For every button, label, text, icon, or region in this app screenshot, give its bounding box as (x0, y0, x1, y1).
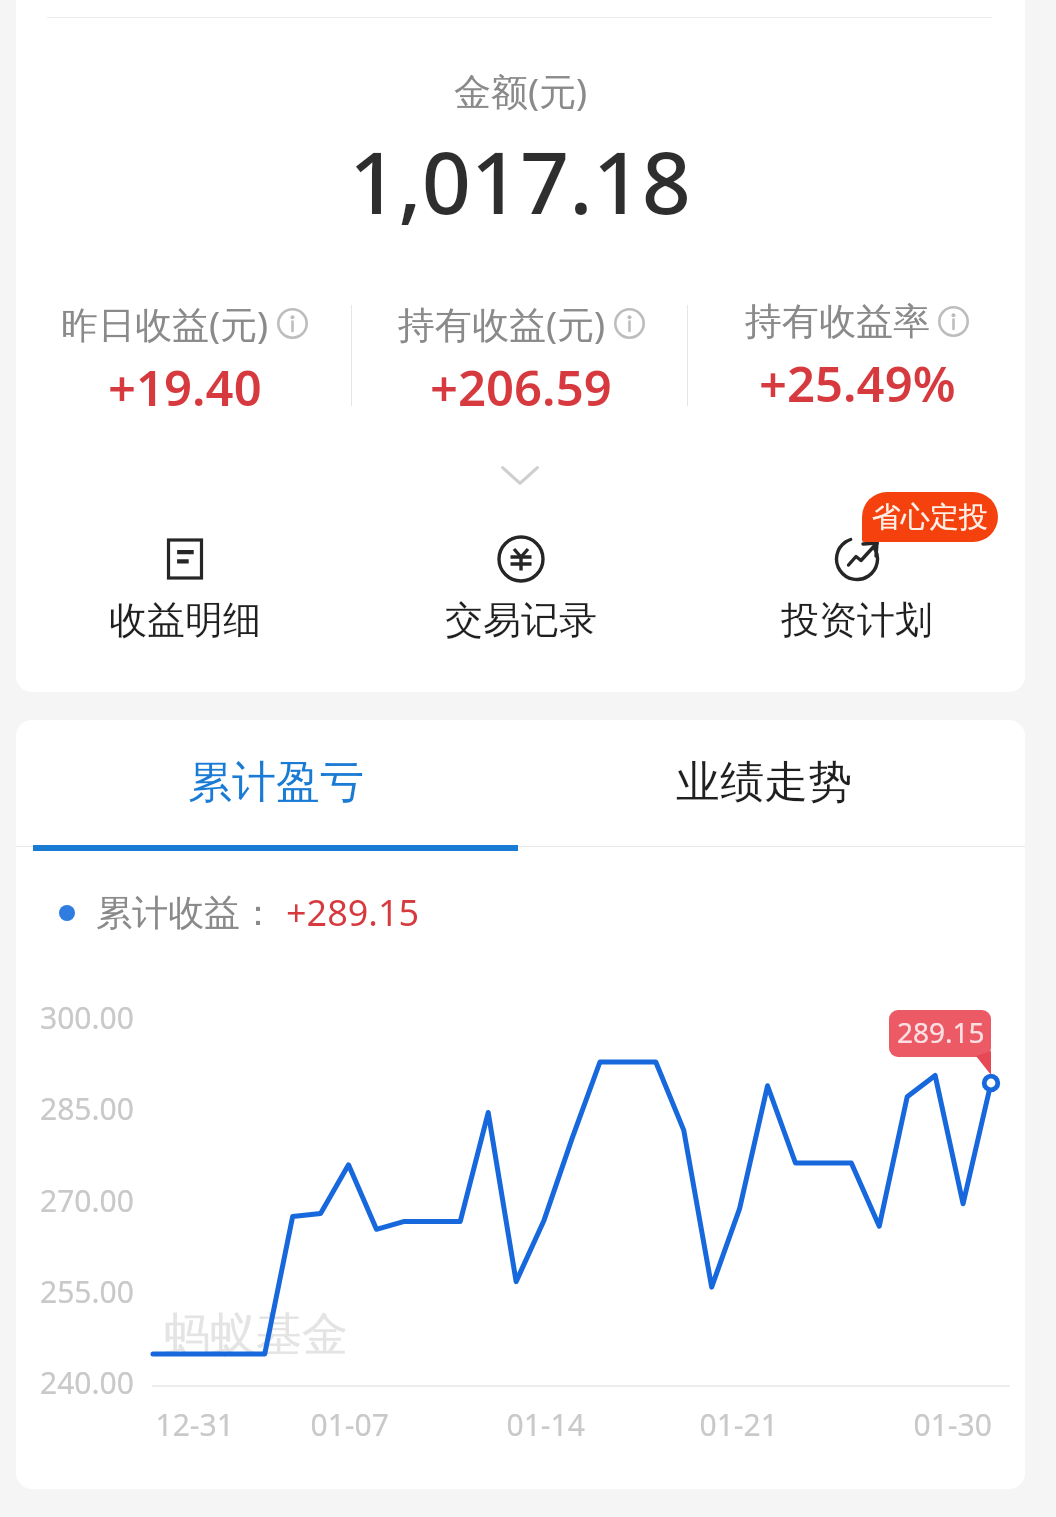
staticText: +206.59 (430, 354, 612, 421)
button[interactable]: 持有收益率 (689, 298, 1025, 417)
staticText: 累计收益： (96, 890, 276, 935)
staticText: +19.40 (108, 354, 262, 421)
staticText: 累计盈亏 (188, 755, 364, 810)
button[interactable]: 交易记录 (353, 533, 689, 644)
button[interactable]: 持有收益(元) (353, 298, 689, 421)
staticText: 投资计划 (781, 596, 933, 644)
staticText: 省心定投 (872, 499, 988, 536)
staticText: 收益明细 (109, 596, 261, 644)
staticText: +25.49% (759, 350, 956, 417)
staticText: 业绩走势 (676, 755, 852, 810)
staticText: 交易记录 (445, 596, 597, 644)
staticText: 持有收益(元) (398, 298, 606, 349)
staticText: 持有收益率 (745, 298, 930, 345)
button[interactable]: 昨日收益(元) (16, 298, 353, 421)
button[interactable]: 投资计划 (689, 533, 1025, 644)
button[interactable]: 累计盈亏 (33, 720, 519, 845)
button[interactable]: 展开 (501, 466, 539, 485)
staticText: 金额(元) (454, 65, 588, 116)
staticText: +289.15 (286, 888, 420, 937)
staticText: 昨日收益(元) (61, 298, 269, 349)
button[interactable]: 收益明细 (16, 533, 353, 644)
staticText: 1,017.18 (349, 122, 692, 239)
button[interactable]: 业绩走势 (519, 720, 1008, 845)
